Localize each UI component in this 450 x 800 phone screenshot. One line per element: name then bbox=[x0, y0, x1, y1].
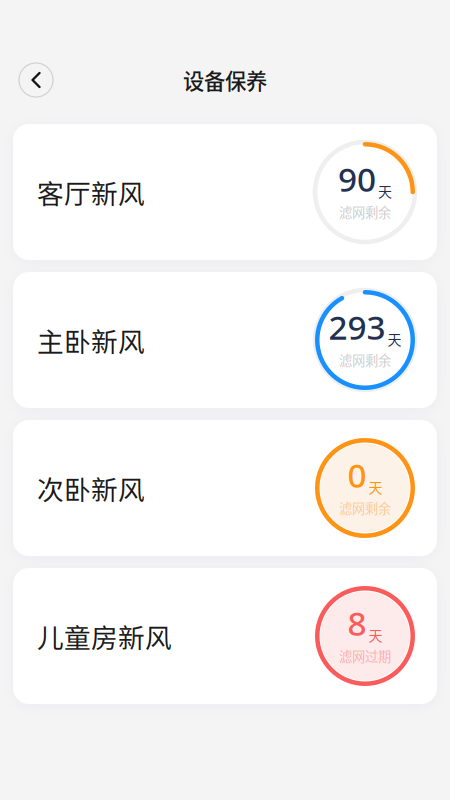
staticText: 293 bbox=[328, 305, 385, 349]
staticText: 天 bbox=[368, 625, 382, 645]
staticText: 8 bbox=[347, 601, 366, 645]
staticText: 设备保养 bbox=[183, 65, 267, 95]
staticText: 滤网剩余 bbox=[339, 202, 391, 221]
staticText: 天 bbox=[368, 477, 382, 497]
button[interactable]: Back bbox=[14, 58, 58, 102]
button[interactable]: 主卧新风 bbox=[13, 272, 437, 408]
staticText: 0 bbox=[347, 453, 366, 497]
staticText: 滤网剩余 bbox=[339, 350, 391, 369]
staticText: 滤网过期 bbox=[339, 646, 391, 665]
button[interactable]: 次卧新风 bbox=[13, 420, 437, 556]
staticText: 次卧新风 bbox=[37, 469, 145, 507]
staticText: 客厅新风 bbox=[37, 173, 145, 211]
staticText: 儿童房新风 bbox=[37, 617, 172, 655]
staticText: 天 bbox=[387, 329, 401, 349]
staticText: 滤网剩余 bbox=[339, 498, 391, 517]
staticText: 天 bbox=[378, 181, 392, 201]
staticText: 90 bbox=[338, 157, 376, 201]
button[interactable]: 客厅新风 bbox=[13, 124, 437, 260]
button[interactable]: 儿童房新风 bbox=[13, 568, 437, 704]
staticText: 主卧新风 bbox=[37, 321, 145, 359]
